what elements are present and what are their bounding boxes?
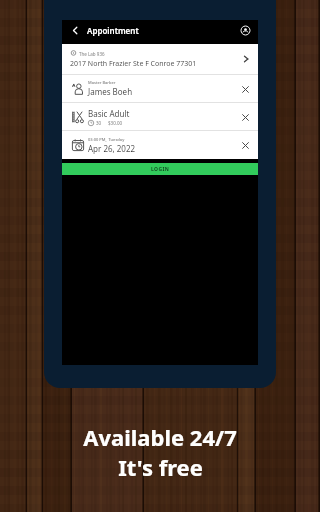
button[interactable]: The Lab 936: [62, 44, 258, 74]
button[interactable]: Back: [68, 23, 82, 37]
button[interactable]: Remove: [238, 138, 252, 152]
button[interactable]: LOGIN: [62, 163, 258, 175]
staticText: Master Barber: [88, 80, 116, 85]
staticText: 03:00 PM, Tuesday: [88, 137, 125, 142]
button[interactable]: Master Barber: [62, 75, 258, 102]
staticText: James Boeh: [88, 86, 133, 97]
button[interactable]: 03:00 PM, Tuesday: [62, 131, 258, 159]
button[interactable]: Remove: [238, 110, 252, 124]
button[interactable]: Remove: [238, 82, 252, 96]
other: Open location: [240, 53, 252, 65]
staticText: Available 24/7: [83, 422, 237, 452]
staticText: Basic Adult: [88, 108, 130, 119]
staticText: Apr 26, 2022: [88, 143, 136, 154]
staticText: The Lab 936: [79, 51, 105, 57]
button[interactable]: Basic Adult: [62, 103, 258, 130]
staticText: 30: [96, 120, 102, 126]
staticText: LOGIN: [151, 166, 170, 173]
staticText: Appointment: [87, 25, 139, 36]
staticText: $30.00: [108, 120, 123, 126]
staticText: It's free: [118, 452, 203, 482]
button[interactable]: Account: [238, 23, 252, 37]
staticText: 2017 North Frazier Ste F Conroe 77301: [70, 59, 197, 69]
